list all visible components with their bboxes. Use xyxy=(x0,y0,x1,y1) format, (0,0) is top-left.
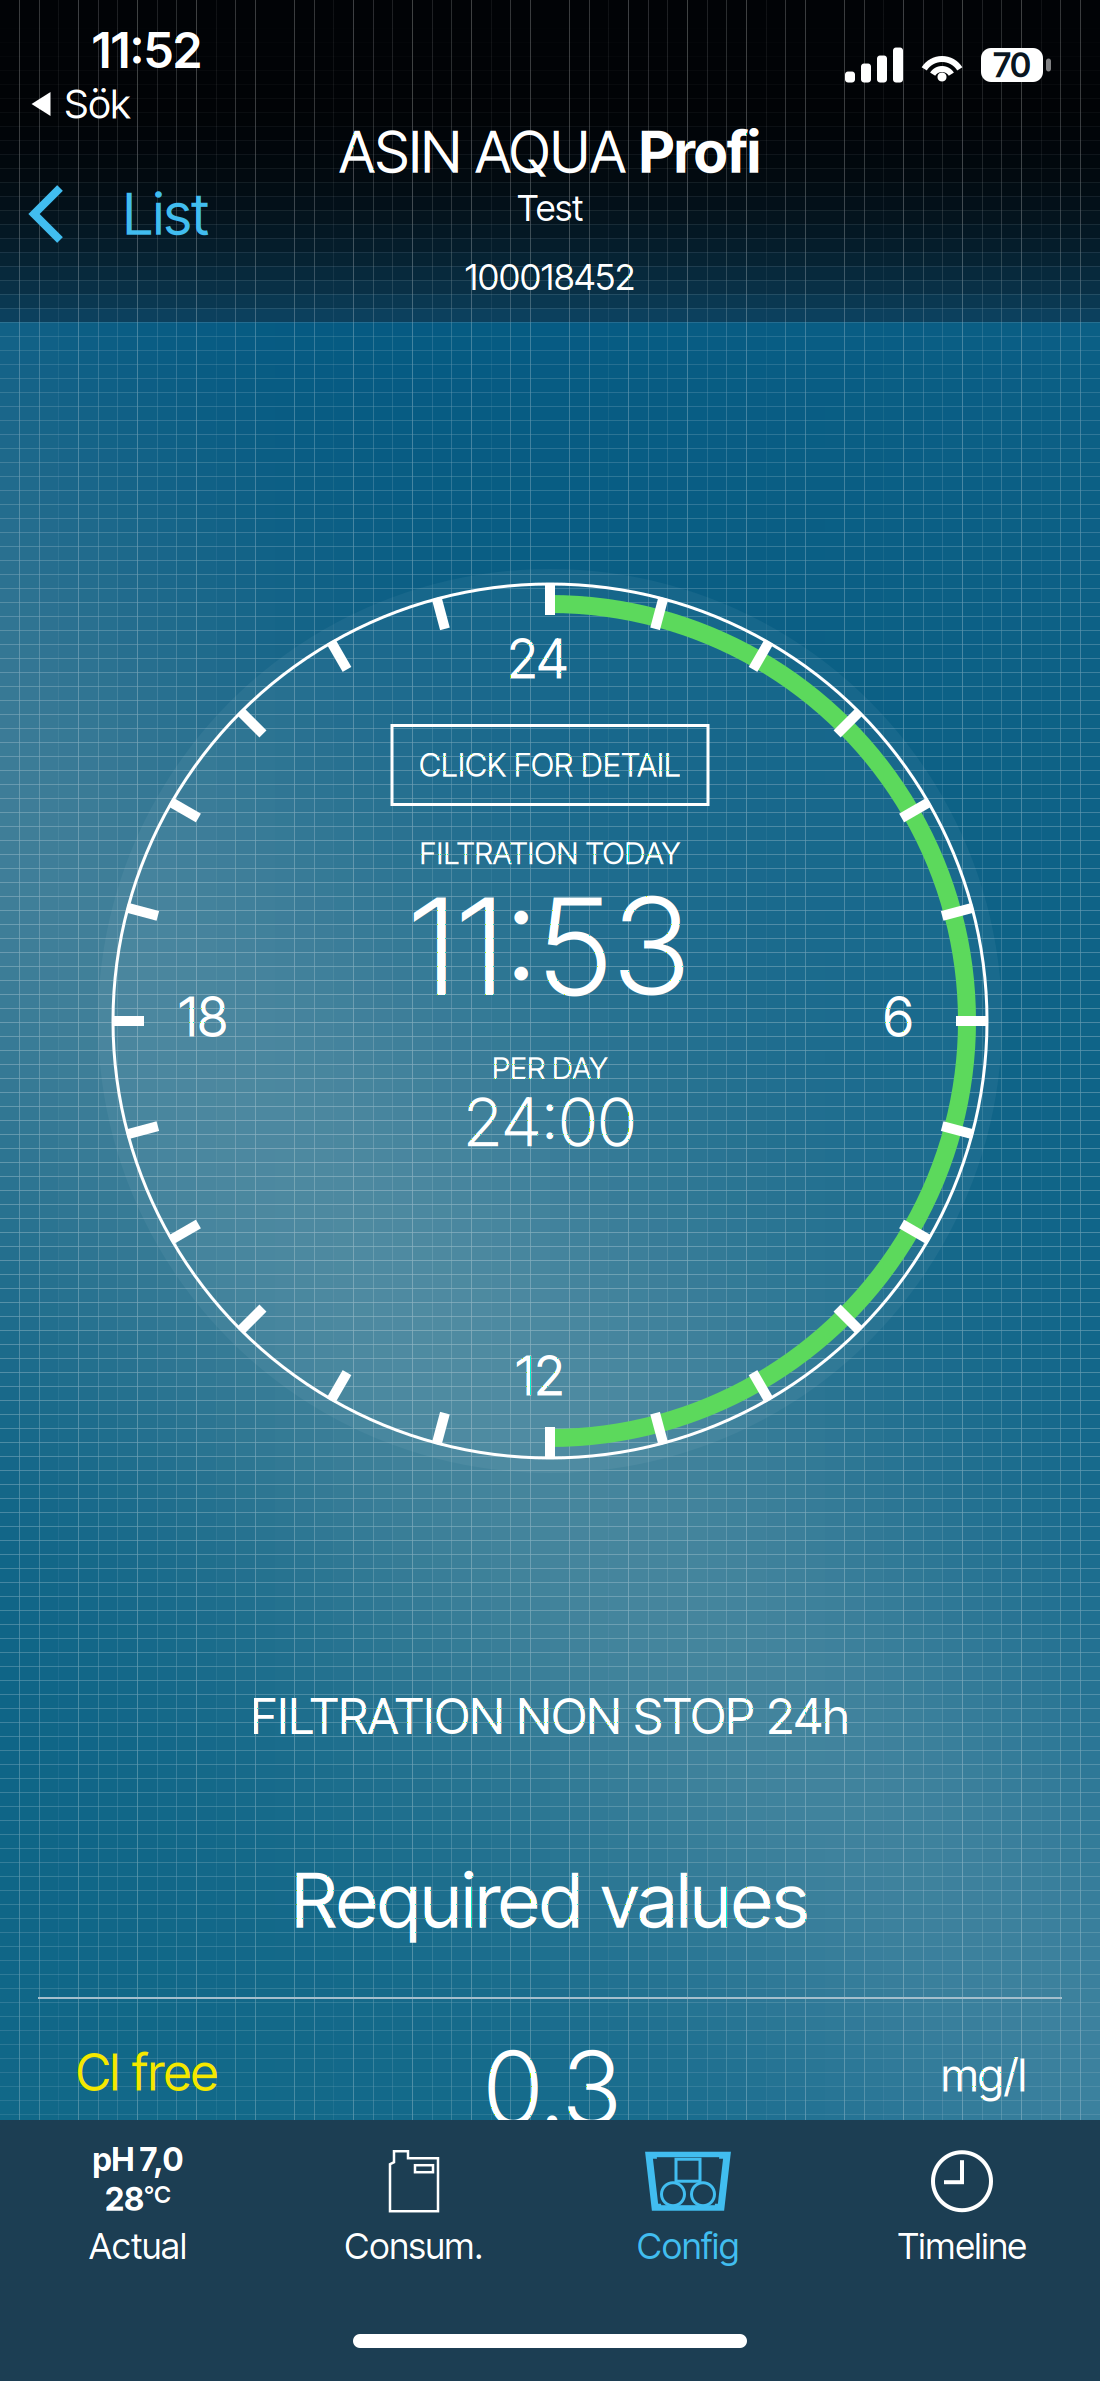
staticText: 6 xyxy=(883,985,913,1049)
button[interactable]: Actual xyxy=(89,2132,187,2268)
staticText: 100018452 xyxy=(465,255,635,299)
staticText: °C xyxy=(144,2180,171,2209)
staticText: FILTRATION NON STOP 24h xyxy=(250,1686,849,1746)
staticText: 11:52 xyxy=(92,20,202,80)
staticText: Consum. xyxy=(344,2224,483,2268)
staticText: mg/l xyxy=(941,2048,1027,2102)
button[interactable]: CLICK FOR DETAIL xyxy=(392,725,708,804)
button[interactable]: Consumption xyxy=(344,2132,483,2268)
staticText: 11:53 xyxy=(408,865,691,1027)
staticText: 24 xyxy=(507,627,568,691)
staticText: List xyxy=(123,179,209,249)
staticText: pH xyxy=(92,2140,134,2179)
button[interactable]: List xyxy=(29,179,209,249)
staticText: FILTRATION TODAY xyxy=(419,834,680,871)
staticText: ASIN AQUA xyxy=(339,117,639,187)
staticText: 24:00 xyxy=(463,1082,636,1162)
button[interactable]: Config xyxy=(637,2132,739,2268)
staticText: 18 xyxy=(178,985,227,1049)
staticText: 12 xyxy=(515,1344,564,1408)
staticText: PER DAY xyxy=(492,1049,608,1086)
staticText: 28 xyxy=(105,2180,144,2218)
staticText: CLICK FOR DETAIL xyxy=(419,746,681,784)
button[interactable]: Timeline xyxy=(897,2132,1026,2268)
staticText: 70 xyxy=(993,45,1031,85)
staticText: Sök xyxy=(64,80,130,128)
staticText: Timeline xyxy=(897,2224,1026,2268)
staticText: 7,0 xyxy=(139,2140,183,2179)
staticText: Cl free xyxy=(76,2041,218,2103)
staticText: 0.3 xyxy=(483,2027,622,2149)
button[interactable]: Back to Sök xyxy=(29,80,130,128)
staticText: Required values xyxy=(291,1854,808,1946)
staticText: Config xyxy=(637,2224,739,2268)
staticText: Actual xyxy=(89,2224,187,2268)
staticText: Test xyxy=(517,186,583,230)
staticText: Profi xyxy=(639,117,761,187)
